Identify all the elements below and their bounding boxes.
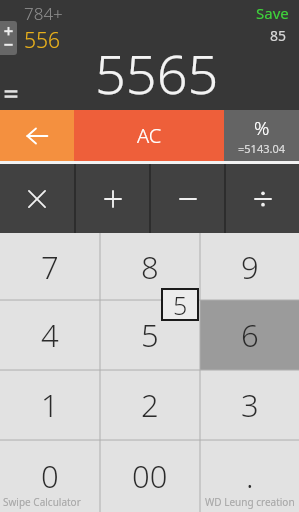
staticText: 5565 — [95, 36, 219, 108]
button[interactable]: . — [200, 440, 299, 512]
staticText: . — [246, 455, 254, 497]
button[interactable]: 4 — [0, 300, 100, 370]
staticText: 3 — [241, 384, 259, 426]
button[interactable]: 0 — [0, 440, 100, 512]
staticText: WD Leung creation — [205, 495, 295, 509]
button[interactable]: 00 — [100, 440, 200, 512]
button[interactable]: plus — [76, 164, 149, 233]
staticText: 4 — [41, 314, 59, 356]
staticText: 5 — [141, 314, 159, 356]
button[interactable]: Save — [252, 2, 293, 24]
button[interactable]: AC — [74, 110, 224, 161]
staticText: 556 — [24, 26, 60, 55]
button[interactable]: 7 — [0, 233, 100, 300]
staticText: 2 — [141, 384, 159, 426]
staticText: AC — [137, 122, 162, 149]
button[interactable]: 2 — [100, 370, 200, 440]
button[interactable]: 8 — [100, 233, 200, 300]
button[interactable]: Increment or decrement — [0, 21, 17, 55]
button[interactable]: divide — [226, 164, 299, 233]
button[interactable]: Backspace — [0, 110, 74, 161]
staticText: 5 — [173, 288, 188, 321]
button[interactable]: 5 — [100, 300, 200, 370]
button[interactable]: 3 — [200, 370, 299, 440]
staticText: =5143.04 — [238, 141, 285, 156]
staticText: 6 — [241, 314, 259, 356]
staticText: 784+ — [24, 2, 63, 25]
staticText: Save — [256, 3, 289, 23]
staticText: 7 — [41, 246, 59, 288]
staticText: 8 — [141, 246, 159, 288]
staticText: 00 — [132, 455, 168, 497]
staticText: 1 — [41, 384, 59, 426]
button[interactable]: Equals — [2, 86, 20, 102]
button[interactable]: times — [0, 164, 74, 233]
button[interactable]: % — [224, 110, 299, 161]
button[interactable]: 6 — [200, 300, 299, 370]
button[interactable]: 1 — [0, 370, 100, 440]
staticText: % — [254, 115, 270, 141]
button[interactable]: 9 — [200, 233, 299, 300]
staticText: 85 — [270, 26, 287, 45]
staticText: 9 — [241, 246, 259, 288]
staticText: Swipe Calculator — [3, 495, 81, 509]
button[interactable]: minus — [151, 164, 224, 233]
staticText: 0 — [41, 455, 59, 497]
